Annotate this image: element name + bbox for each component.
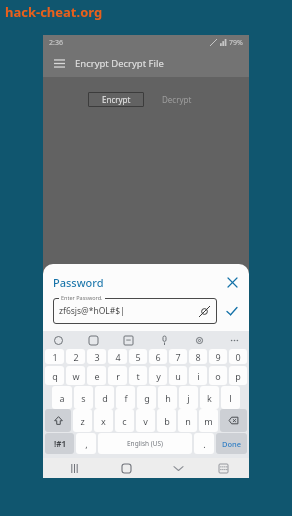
button[interactable]: p (229, 366, 247, 385)
button[interactable]: r (108, 366, 127, 385)
button[interactable]: 7 (169, 349, 187, 364)
staticText: Encrypt (102, 94, 131, 105)
button[interactable]: GIF (121, 333, 135, 347)
staticText: English (US) (127, 439, 164, 448)
button[interactable]: Encrypt (88, 92, 144, 107)
staticText: f (124, 392, 128, 404)
button[interactable]: Close (223, 273, 241, 291)
button[interactable]: Home (117, 459, 135, 477)
staticText: 4 (115, 351, 121, 363)
staticText: q (52, 370, 58, 382)
staticText: j (187, 392, 190, 404)
staticText: e (94, 370, 100, 382)
button[interactable]: x (94, 409, 113, 432)
button[interactable]: 0 (229, 349, 247, 364)
staticText: Decrypt (162, 94, 192, 105)
button[interactable]: n (178, 409, 197, 432)
button[interactable]: k (200, 386, 219, 409)
staticText: x (101, 415, 106, 427)
button[interactable]: Hide keyboard (169, 459, 187, 477)
button[interactable]: 2 (66, 349, 85, 364)
staticText: y (156, 370, 161, 382)
button[interactable]: Voice input (157, 333, 171, 347)
button[interactable]: h (158, 386, 177, 409)
button[interactable]: m (199, 409, 218, 432)
button[interactable]: Recents (65, 459, 83, 477)
button[interactable]: q (45, 366, 64, 385)
staticText: Password (53, 275, 104, 290)
button[interactable]: g (137, 386, 156, 409)
staticText: l (229, 392, 232, 404)
staticText: 7 (175, 351, 181, 363)
staticText: r (116, 370, 120, 382)
button[interactable]: . (194, 433, 214, 454)
button[interactable]: f (116, 386, 135, 409)
button[interactable]: o (209, 366, 227, 385)
staticText: . (203, 438, 206, 450)
staticText: k (207, 392, 212, 404)
button[interactable]: d (95, 386, 114, 409)
button[interactable]: More options (227, 333, 241, 347)
staticText: p (235, 370, 241, 382)
button[interactable]: Backspace (220, 409, 247, 432)
staticText: v (143, 415, 148, 427)
staticText: d (102, 392, 108, 404)
button[interactable]: 4 (108, 349, 127, 364)
button[interactable]: 1 (45, 349, 64, 364)
button[interactable]: Keyboard switcher (214, 459, 232, 477)
button[interactable]: l (221, 386, 240, 409)
staticText: Enter Password. (61, 294, 103, 301)
button[interactable]: Toggle password visibility (197, 304, 211, 318)
button[interactable]: zf6sjs@*hOL#$| (53, 298, 217, 324)
staticText: m (204, 415, 213, 427)
button[interactable]: i (189, 366, 207, 385)
staticText: z (80, 415, 85, 427)
button[interactable]: t (129, 366, 147, 385)
staticText: 1 (52, 351, 58, 363)
button[interactable]: Done (216, 433, 247, 454)
staticText: g (144, 392, 150, 404)
button[interactable]: a (52, 386, 72, 409)
staticText: hack-cheat.org (5, 3, 103, 21)
button[interactable]: 6 (149, 349, 167, 364)
staticText: 2 (73, 351, 79, 363)
staticText: 3 (94, 351, 100, 363)
button[interactable]: e (87, 366, 106, 385)
button[interactable]: Confirm (223, 302, 241, 320)
button[interactable]: , (76, 433, 96, 454)
button[interactable]: w (66, 366, 85, 385)
button[interactable]: s (74, 386, 93, 409)
staticText: 6 (155, 351, 161, 363)
button[interactable]: 3 (87, 349, 106, 364)
button[interactable]: z (73, 409, 92, 432)
staticText: 0 (235, 351, 241, 363)
button[interactable]: 8 (189, 349, 207, 364)
staticText: b (164, 415, 170, 427)
button[interactable]: u (169, 366, 187, 385)
staticText: i (197, 370, 200, 382)
button[interactable]: Settings (192, 333, 206, 347)
button[interactable]: v (136, 409, 155, 432)
button[interactable]: Emoji (51, 333, 65, 347)
staticText: c (122, 415, 127, 427)
staticText: , (85, 438, 88, 450)
button[interactable]: Menu (52, 56, 67, 71)
staticText: Encrypt Decrypt File (75, 57, 164, 70)
staticText: Done (222, 439, 242, 449)
button[interactable]: English (US) (98, 433, 192, 454)
button[interactable]: c (115, 409, 134, 432)
button[interactable]: Shift (45, 409, 71, 432)
staticText: zf6sjs@*hOL#$| (59, 305, 125, 317)
button[interactable]: y (149, 366, 167, 385)
staticText: n (185, 415, 191, 427)
staticText: 8 (195, 351, 201, 363)
staticText: o (215, 370, 221, 382)
button[interactable]: 9 (209, 349, 227, 364)
button[interactable]: 5 (129, 349, 147, 364)
button[interactable]: Decrypt (150, 92, 204, 107)
button[interactable]: Stickers (86, 333, 100, 347)
button[interactable]: b (157, 409, 176, 432)
button[interactable]: j (179, 386, 198, 409)
button[interactable]: !#1 (45, 433, 74, 454)
staticText: 5 (135, 351, 141, 363)
